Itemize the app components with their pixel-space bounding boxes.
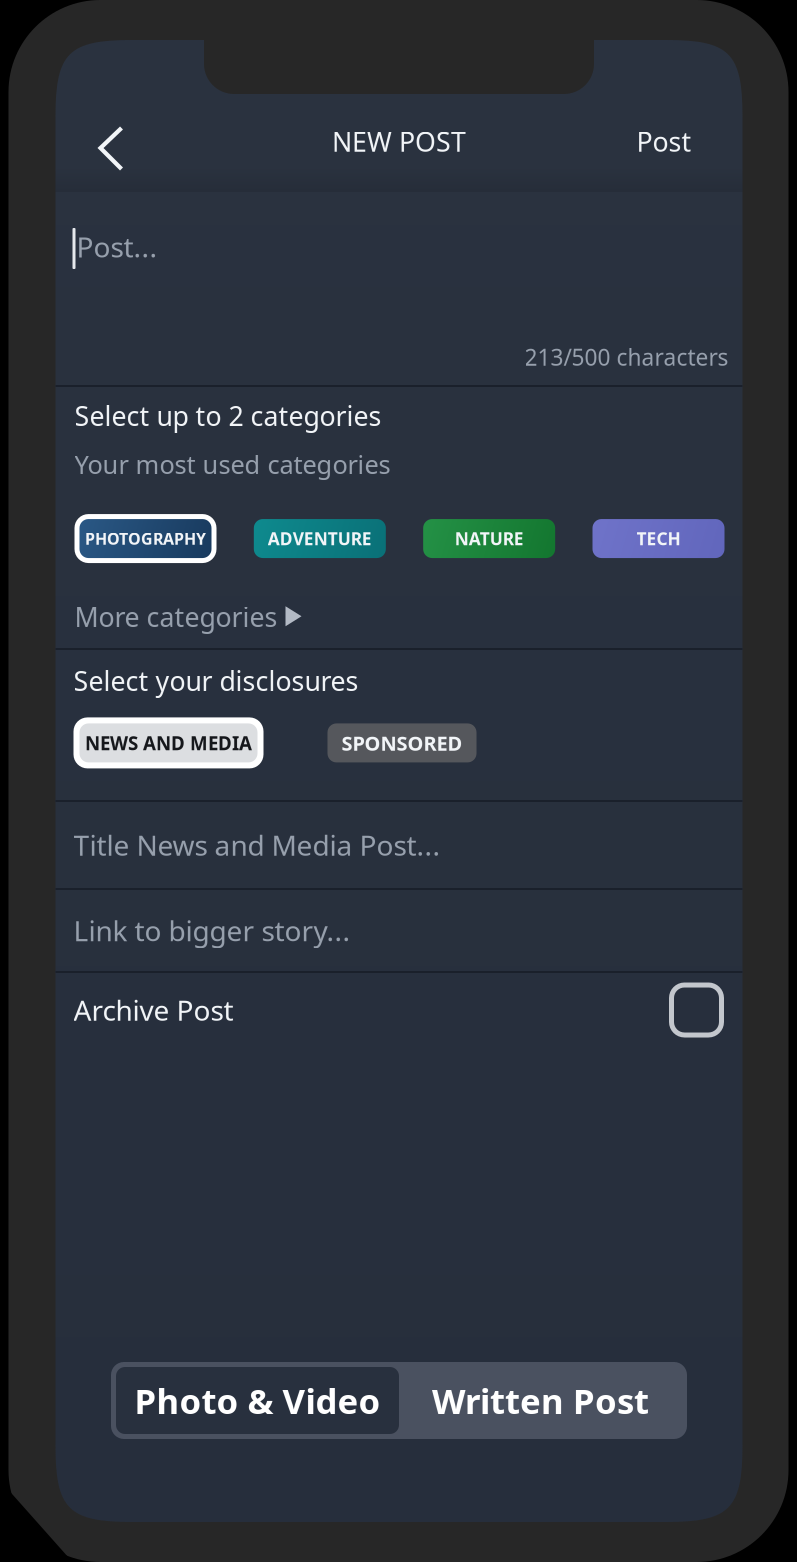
staticText: Post <box>636 124 691 159</box>
staticText: Link to bigger story... <box>73 912 350 949</box>
staticText: Title News and Media Post... <box>73 826 440 864</box>
staticText: Your most used categories <box>74 447 390 481</box>
staticText: 213/500 characters <box>524 342 728 372</box>
staticText: Select your disclosures <box>73 663 358 698</box>
staticText: NEWS AND MEDIA <box>85 730 252 755</box>
staticText: Select up to 2 categories <box>74 398 381 433</box>
staticText: More categories <box>74 599 277 634</box>
staticText: Photo & Video <box>134 1377 380 1423</box>
button[interactable]: Photo & Video <box>116 1367 399 1434</box>
button[interactable]: NEWS AND MEDIA <box>73 717 263 768</box>
button[interactable]: More categories <box>74 587 302 646</box>
button[interactable]: Archive Post <box>55 973 742 1047</box>
staticText: PHOTOGRAPHY <box>85 528 206 549</box>
staticText: ADVENTURE <box>268 527 372 550</box>
button[interactable]: Back <box>55 91 150 192</box>
staticText: NATURE <box>455 527 524 550</box>
button[interactable]: Written Post <box>399 1367 682 1434</box>
button[interactable]: SPONSORED <box>327 723 476 762</box>
staticText: Archive Post <box>73 991 233 1029</box>
button[interactable]: Post <box>608 98 742 185</box>
button[interactable]: TECH <box>592 519 724 558</box>
button[interactable]: Title News and Media Post... <box>55 802 742 888</box>
staticText: SPONSORED <box>341 730 462 756</box>
staticText: Written Post <box>432 1377 649 1423</box>
staticText: TECH <box>636 527 680 550</box>
button[interactable]: PHOTOGRAPHY <box>74 514 216 563</box>
staticText: NEW POST <box>332 124 466 159</box>
button[interactable]: Link to bigger story... <box>55 890 742 971</box>
staticText: Post... <box>76 228 157 265</box>
button[interactable]: ADVENTURE <box>254 519 386 558</box>
button[interactable]: NATURE <box>423 519 555 558</box>
